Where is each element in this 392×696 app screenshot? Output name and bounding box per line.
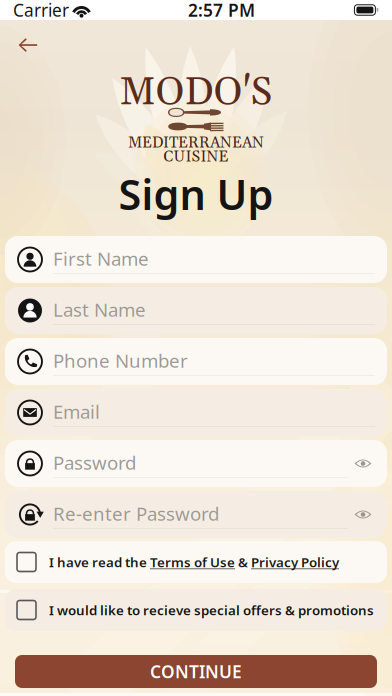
button[interactable]: I have read the Terms of Use & Privacy P… — [5, 541, 387, 583]
button[interactable]: Back — [8, 28, 48, 62]
staticText: MODO'S — [119, 68, 272, 118]
button[interactable]: Re-enter Password — [5, 491, 387, 538]
staticText: Last Name — [53, 297, 146, 322]
button[interactable]: First Name — [5, 236, 387, 283]
button[interactable]: Password — [5, 440, 387, 487]
staticText: Re-enter Password — [53, 501, 219, 526]
staticText: Phone Number — [53, 348, 188, 373]
staticText: Email — [53, 399, 100, 424]
button[interactable]: I would like to recieve special offers &… — [5, 589, 387, 631]
staticText: MEDITERRANEAN — [128, 133, 264, 153]
button[interactable]: Phone Number — [5, 338, 387, 385]
staticText: First Name — [53, 246, 149, 271]
staticText: CONTINUE — [150, 660, 242, 683]
staticText: 2:57 PM — [188, 0, 255, 21]
staticText: Password — [53, 450, 136, 475]
button[interactable]: Last Name — [5, 287, 387, 334]
staticText: I would like to recieve special offers &… — [49, 601, 374, 619]
button[interactable]: Email — [5, 389, 387, 436]
staticText: Sign Up — [118, 167, 273, 221]
staticText: Carrier — [13, 0, 69, 21]
staticText: I have read the Terms of Use & Privacy P… — [49, 553, 339, 571]
button[interactable]: CONTINUE — [15, 655, 377, 688]
staticText: CUISINE — [163, 147, 228, 167]
